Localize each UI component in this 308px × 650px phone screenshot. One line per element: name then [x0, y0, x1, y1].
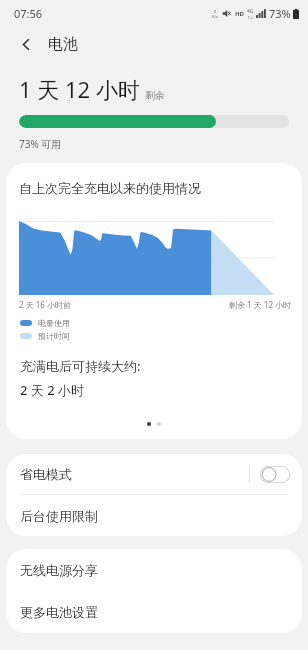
staticText: 剩余 [145, 89, 165, 102]
staticText: 电量使用 [38, 318, 70, 328]
staticText: K/s [212, 14, 218, 19]
button[interactable]: 自上次完全充电以来的使用情况 [6, 163, 302, 439]
button[interactable]: 省电模式 开关 [260, 466, 290, 483]
staticText: 0 [214, 9, 217, 14]
staticText: 剩余 1 天 12 小时 [229, 299, 292, 310]
button[interactable]: 更多电池设置 [6, 591, 302, 633]
staticText: 2 天 2 小时 [20, 381, 85, 399]
staticText: 73% [269, 6, 291, 21]
staticText: 电池 [48, 35, 78, 54]
button[interactable]: Back [12, 30, 40, 58]
staticText: HD [235, 10, 244, 18]
button[interactable]: 后台使用限制 [6, 495, 302, 536]
staticText: 4G [247, 8, 254, 15]
staticText: 预计时间 [38, 331, 70, 341]
staticText: 1 天 12 小时 [19, 74, 140, 104]
staticText: 73% 可用 [19, 137, 62, 151]
staticText: 充满电后可持续大约: [20, 357, 141, 375]
staticText: 07:56 [14, 6, 43, 21]
staticText: 省电模式 [20, 466, 72, 482]
staticText: 更多电池设置 [20, 604, 98, 620]
staticText: 无线电源分享 [20, 562, 98, 578]
staticText: 2 天 16 小时前 [19, 299, 71, 310]
button[interactable]: 省电模式 [6, 454, 302, 494]
button[interactable]: 无线电源分享 [6, 549, 302, 591]
staticText: 后台使用限制 [20, 508, 98, 524]
staticText: 自上次完全充电以来的使用情况 [19, 180, 201, 196]
staticText: ↑↓ [247, 15, 254, 20]
